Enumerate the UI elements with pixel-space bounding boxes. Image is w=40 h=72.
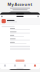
- button[interactable]: Orders: [20, 65, 30, 67]
- button[interactable]: Settings: [37, 15, 40, 18]
- button[interactable]: Back: [0, 15, 3, 18]
- staticText: My Account: [7, 2, 32, 7]
- button[interactable]: [0, 18, 40, 24]
- button[interactable]: Home: [0, 65, 10, 67]
- button[interactable]: Save: [15, 60, 24, 62]
- button[interactable]: Search: [10, 65, 20, 67]
- button[interactable]: Account: [30, 65, 40, 67]
